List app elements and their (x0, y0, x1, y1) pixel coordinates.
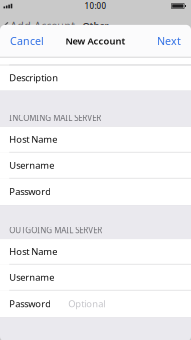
button[interactable]: Username (0, 153, 191, 179)
button[interactable]: Username (0, 265, 191, 291)
staticText: 10:00 (84, 1, 106, 11)
staticText: Host Name (9, 133, 57, 145)
staticText: Password (9, 185, 51, 198)
button[interactable]: Description (0, 65, 191, 91)
staticText: INCOMING MAIL SERVER (9, 112, 101, 123)
staticText: Optional (68, 297, 105, 310)
button[interactable]: Password (0, 291, 191, 317)
button[interactable]: Next (152, 26, 186, 56)
button[interactable]: Host Name (0, 239, 191, 265)
staticText: Username (9, 159, 54, 171)
button[interactable]: Cancel (5, 26, 49, 56)
staticText: New Account (65, 35, 125, 47)
button[interactable]: Add Account (3, 18, 75, 33)
staticText: Other (82, 19, 108, 32)
button[interactable]: Host Name (0, 127, 191, 153)
staticText: Host Name (9, 245, 57, 258)
staticText: Password (9, 297, 51, 310)
staticText: Description (9, 71, 58, 84)
staticText: OUTGOING MAIL SERVER (9, 225, 102, 235)
staticText: Cancel (10, 34, 44, 48)
staticText: Next (157, 34, 181, 48)
button[interactable]: Password (0, 179, 191, 205)
staticText: Add Account (10, 18, 75, 33)
staticText: Username (9, 271, 54, 283)
